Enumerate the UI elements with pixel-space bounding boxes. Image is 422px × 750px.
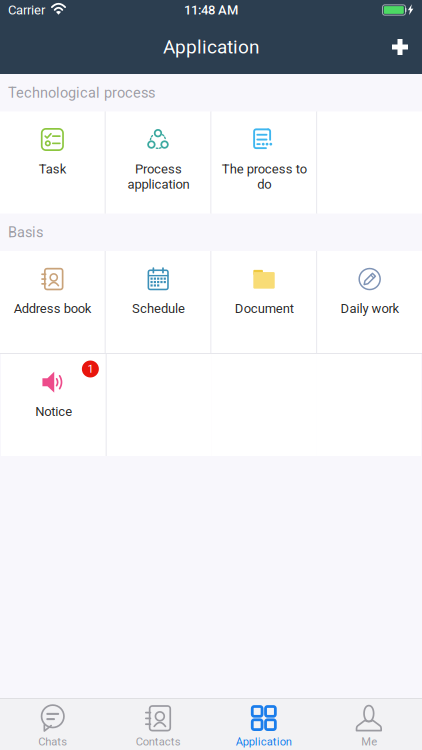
button[interactable]: The process to do: [211, 111, 316, 213]
staticText: Carrier: [8, 2, 45, 18]
button[interactable]: Address book: [0, 251, 105, 353]
button[interactable]: Document: [211, 251, 316, 353]
staticText: Contacts: [136, 735, 181, 748]
staticText: Notice: [35, 404, 72, 419]
staticText: Daily work: [340, 301, 399, 316]
staticText: The process to do: [221, 161, 306, 192]
staticText: Document: [234, 301, 293, 316]
button[interactable]: Application: [211, 699, 316, 750]
staticText: Me: [361, 735, 377, 748]
staticText: Address book: [13, 301, 91, 316]
staticText: Task: [38, 161, 66, 177]
button[interactable]: 1: [1, 354, 106, 456]
staticText: Process application: [127, 161, 189, 192]
staticText: 1: [87, 363, 93, 375]
button[interactable]: Me: [316, 699, 422, 750]
button[interactable]: Add: [378, 25, 422, 69]
staticText: Schedule: [132, 301, 185, 316]
staticText: Application: [236, 735, 292, 748]
staticText: 11:48 AM: [184, 2, 238, 18]
button[interactable]: Contacts: [105, 699, 211, 750]
button[interactable]: Daily work: [317, 251, 422, 353]
staticText: Basis: [8, 224, 43, 241]
button[interactable]: Task: [0, 111, 105, 213]
button[interactable]: Schedule: [106, 251, 211, 353]
staticText: Chats: [38, 735, 67, 748]
staticText: Application: [163, 36, 259, 58]
button[interactable]: Chats: [0, 699, 105, 750]
button[interactable]: Process application: [106, 111, 211, 213]
staticText: Technological process: [8, 84, 155, 101]
